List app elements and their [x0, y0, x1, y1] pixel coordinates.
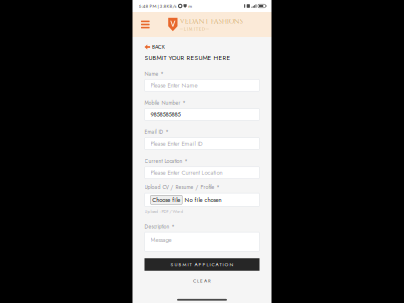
staticText: Mobile Number * [144, 99, 185, 107]
staticText: Please Enter Current Location [150, 168, 222, 177]
staticText: Message [150, 236, 171, 244]
button[interactable]: C L E A R [144, 277, 259, 285]
staticText: VEDANT FASHIONS [180, 17, 243, 26]
staticText: 6:48 PM | 3.8KB/s [138, 2, 176, 9]
staticText: 9858585885 [150, 110, 180, 119]
staticText: Please Enter Name [150, 81, 197, 90]
button[interactable]: Menu [141, 13, 158, 35]
button[interactable]: S U B M I T A P P L I C A T I O N [144, 258, 259, 271]
button[interactable]: Choose file [150, 195, 182, 204]
staticText: — L I M I T E D — [180, 27, 209, 32]
staticText: m [188, 2, 192, 9]
staticText: C L E A R [193, 277, 211, 284]
staticText: Upload : PDF / Word [144, 208, 183, 215]
staticText: Name * [144, 70, 163, 78]
staticText: Upload CV / Resume / Profile * [144, 183, 219, 191]
staticText: SUBMIT YOUR RESUME HERE [144, 53, 230, 62]
staticText: Current Location * [144, 157, 187, 165]
button[interactable]: Vedant Fashions Limited home [168, 17, 243, 32]
button[interactable]: BACK [144, 44, 165, 50]
staticText: No file chosen [184, 196, 221, 204]
staticText: Email ID * [144, 128, 168, 136]
staticText: BACK [152, 43, 165, 51]
staticText: S U B M I T A P P L I C A T I O N [170, 261, 233, 268]
staticText: Description * [144, 223, 174, 230]
staticText: Please Enter Email ID [150, 139, 202, 148]
staticText: Choose file [152, 196, 180, 204]
